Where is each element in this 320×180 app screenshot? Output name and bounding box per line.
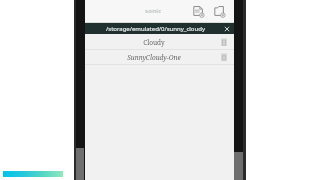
button[interactable]: Close [222,24,232,34]
button[interactable]: Cloudy [85,35,234,49]
staticText: SunnyCloudy-One [127,53,181,62]
staticText: sonic [145,7,162,15]
button[interactable]: SunnyCloudy-One [85,50,234,64]
staticText: Cloudy [143,38,165,47]
button[interactable]: Delete [219,37,229,47]
button[interactable]: New folder [210,2,228,20]
button[interactable]: Delete [219,52,229,62]
staticText: /storage/emulated/0/sunny_cloudy [106,25,205,33]
button[interactable]: New file [189,2,207,20]
button[interactable]: /storage/emulated/0/sunny_cloudy [85,23,234,34]
